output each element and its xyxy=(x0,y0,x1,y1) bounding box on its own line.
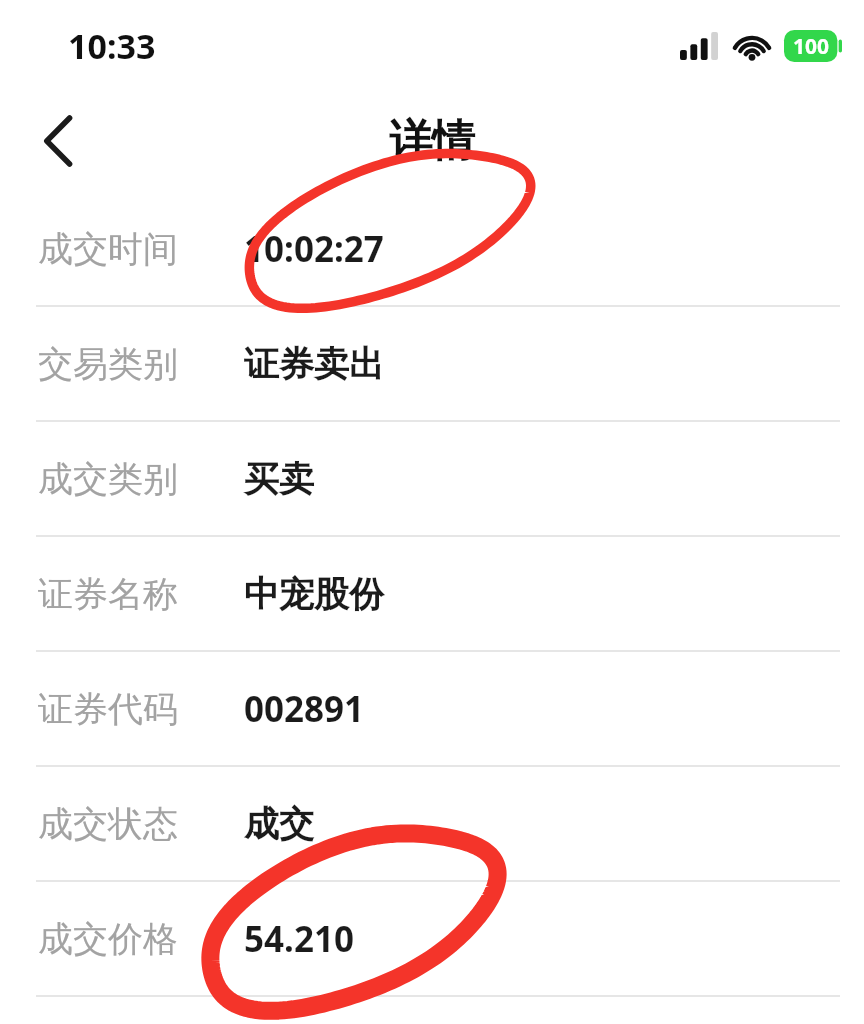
staticText: 100 xyxy=(793,32,830,61)
button[interactable]: Back xyxy=(24,105,96,177)
staticText: 成交 xyxy=(244,802,314,846)
staticText: 交易类别 xyxy=(38,342,244,386)
button[interactable]: 成交价格 xyxy=(0,882,864,997)
staticText: 54.210 xyxy=(244,915,354,963)
staticText: 成交时间 xyxy=(38,227,244,271)
staticText: 成交类别 xyxy=(38,457,244,501)
staticText: 中宠股份 xyxy=(244,572,384,616)
staticText: 成交价格 xyxy=(38,917,244,961)
button[interactable]: 交易类别 xyxy=(0,307,864,422)
staticText: 详情 xyxy=(389,114,475,168)
staticText: 10:33 xyxy=(68,23,156,69)
staticText: 买卖 xyxy=(244,457,314,501)
button[interactable]: 证券代码 xyxy=(0,652,864,767)
staticText: 成交状态 xyxy=(38,802,244,846)
button[interactable]: 证券名称 xyxy=(0,537,864,652)
button[interactable]: 成交时间 xyxy=(0,192,864,307)
button[interactable]: 成交状态 xyxy=(0,767,864,882)
button[interactable]: 成交类别 xyxy=(0,422,864,537)
staticText: 证券代码 xyxy=(38,687,244,731)
staticText: 证券卖出 xyxy=(244,342,384,386)
staticText: 002891 xyxy=(244,685,365,733)
staticText: 证券名称 xyxy=(38,572,244,616)
staticText: 10:02:27 xyxy=(244,225,384,273)
